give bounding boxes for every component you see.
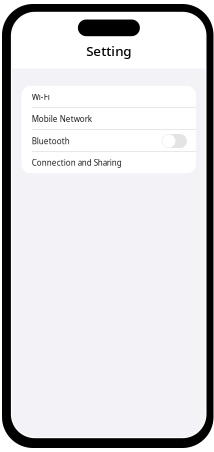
- staticText: Wi-Fi: [32, 92, 50, 102]
- button[interactable]: Mobile Network: [21, 108, 196, 130]
- staticText: Bluetooth: [32, 136, 70, 146]
- button[interactable]: Connection and Sharing: [21, 152, 196, 173]
- staticText: Connection and Sharing: [32, 157, 122, 168]
- button[interactable]: Wi-Fi: [21, 86, 196, 108]
- button[interactable]: Bluetooth: [21, 130, 196, 152]
- staticText: Setting: [86, 42, 131, 60]
- staticText: Mobile Network: [32, 114, 92, 124]
